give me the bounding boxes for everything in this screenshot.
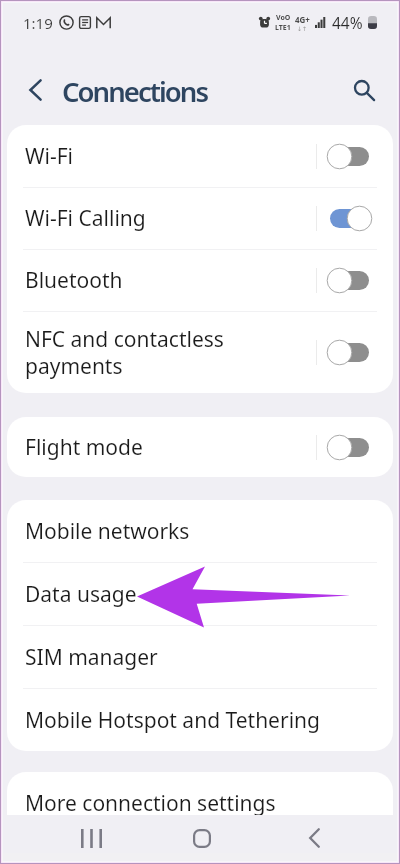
button[interactable]: On <box>330 209 369 228</box>
staticText: Mobile Hotspot and Tethering <box>25 706 320 735</box>
button[interactable]: More connection settings <box>7 772 393 834</box>
button[interactable]: Mobile networks <box>7 500 393 562</box>
staticText: ↓↑ <box>297 25 308 32</box>
button[interactable]: Off <box>330 343 369 362</box>
staticText: Data usage <box>25 580 137 609</box>
staticText: 44% <box>332 12 363 33</box>
staticText: Bluetooth <box>25 266 316 295</box>
button[interactable]: SIM manager <box>7 626 393 688</box>
staticText: SIM manager <box>25 643 158 672</box>
staticText: Connections <box>62 73 208 110</box>
button[interactable]: Bluetooth <box>7 250 393 311</box>
staticText: Wi-Fi <box>25 142 316 171</box>
button[interactable]: Off <box>330 271 369 290</box>
button[interactable]: Back <box>264 815 364 861</box>
button[interactable]: Mobile Hotspot and Tethering <box>7 689 393 751</box>
staticText: LTE1 <box>275 23 291 33</box>
staticText: Flight mode <box>25 433 316 462</box>
staticText: NFC and contactless payments <box>25 325 316 380</box>
staticText: VoO <box>276 13 291 23</box>
staticText: More connection settings <box>25 789 276 818</box>
button[interactable]: Recents <box>41 815 141 861</box>
button[interactable]: Flight mode <box>7 417 393 477</box>
button[interactable]: Wi-Fi <box>7 125 393 187</box>
button[interactable]: Back <box>23 70 47 110</box>
staticText: Wi-Fi Calling <box>25 204 316 233</box>
staticText: 4G+ <box>295 14 310 25</box>
button[interactable]: Home <box>152 815 252 861</box>
button[interactable]: NFC and contactless payments <box>7 312 393 393</box>
button[interactable]: Data usage <box>7 563 393 625</box>
button[interactable]: Search <box>338 64 390 116</box>
button[interactable]: Off <box>330 438 369 457</box>
staticText: 1:19 <box>23 13 53 33</box>
button[interactable]: Wi-Fi Calling <box>7 188 393 249</box>
staticText: Mobile networks <box>25 517 190 546</box>
button[interactable]: Off <box>330 147 369 166</box>
